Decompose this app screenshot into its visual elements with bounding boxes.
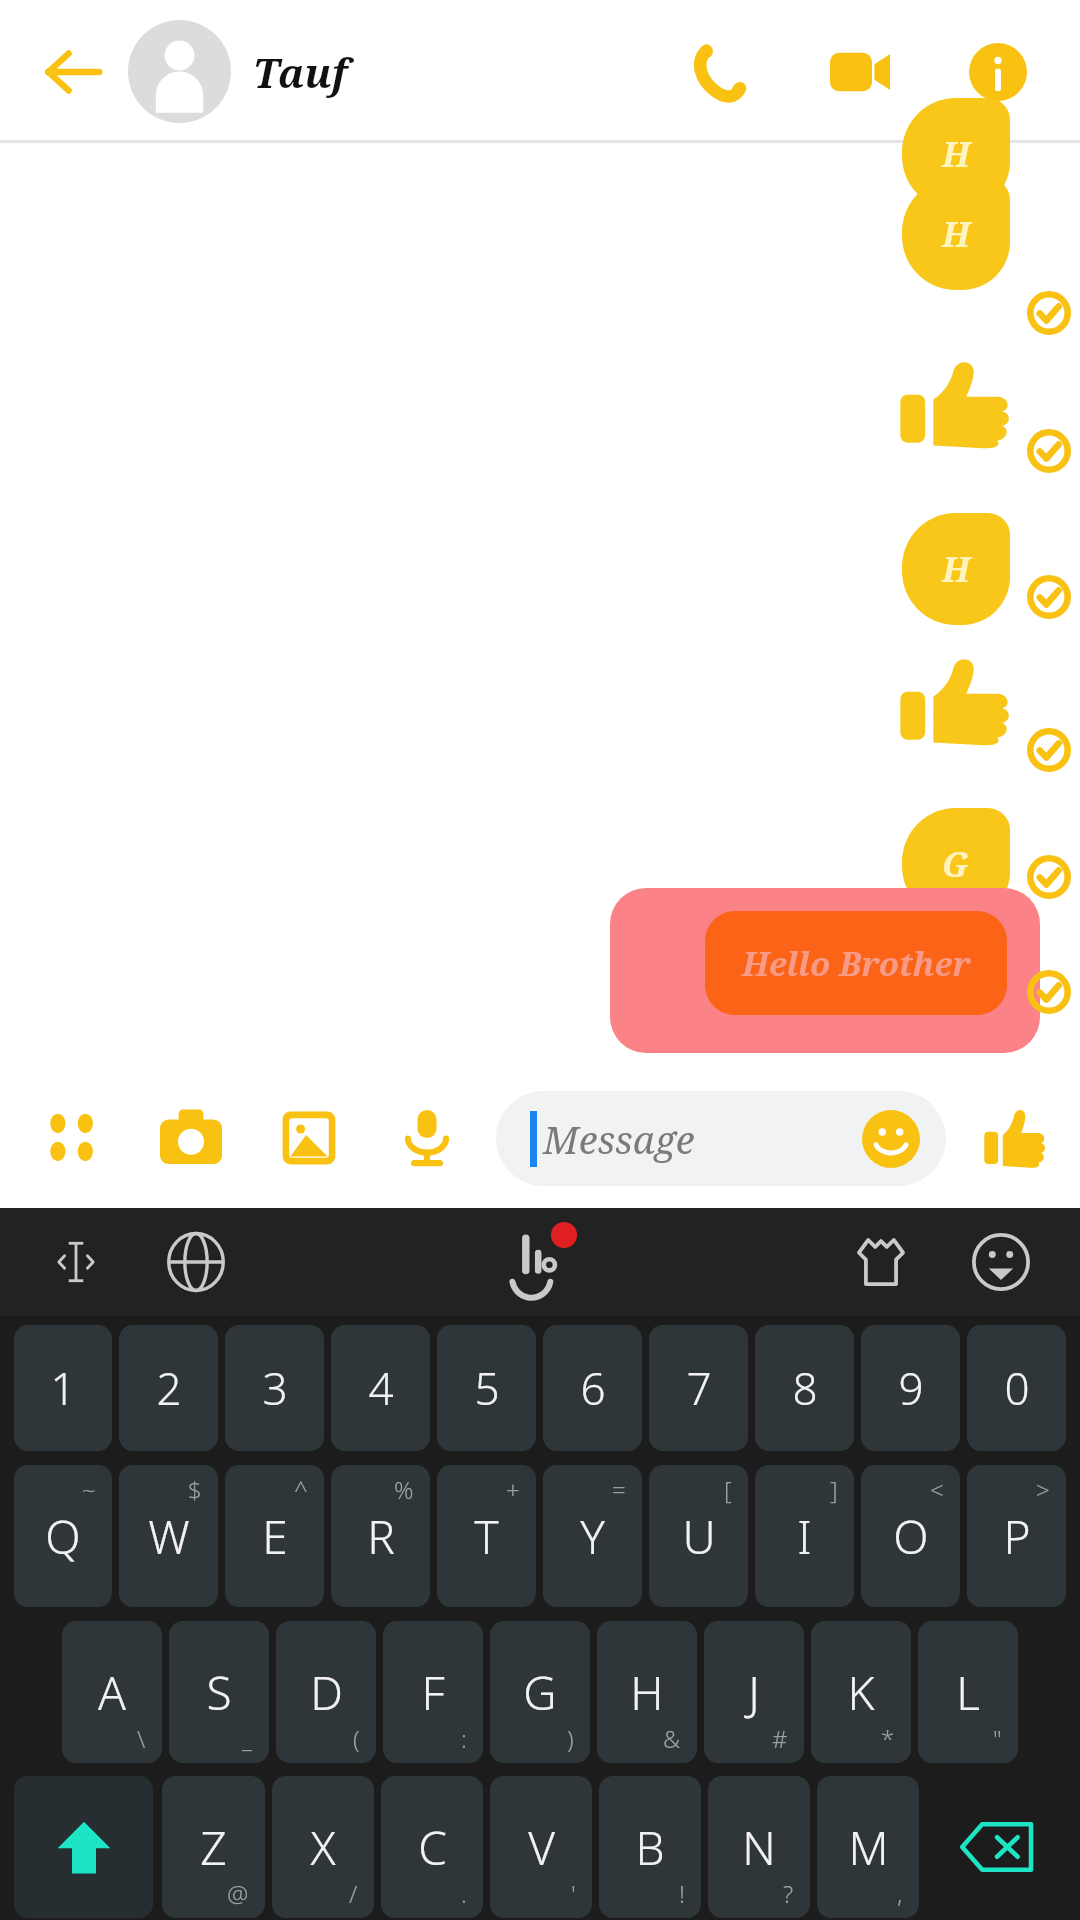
button[interactable]: 7 bbox=[649, 1325, 748, 1451]
staticText: > bbox=[1036, 1473, 1050, 1506]
staticText: G bbox=[523, 1661, 557, 1724]
button[interactable]: E bbox=[225, 1465, 324, 1607]
button[interactable]: 8 bbox=[755, 1325, 854, 1451]
staticText: " bbox=[993, 1722, 1002, 1755]
staticText: = bbox=[612, 1473, 626, 1506]
staticText: I bbox=[797, 1505, 812, 1568]
staticText: # bbox=[772, 1722, 788, 1755]
staticText: D bbox=[310, 1661, 343, 1724]
staticText: 6 bbox=[580, 1358, 606, 1418]
button[interactable]: P bbox=[967, 1465, 1066, 1607]
staticText: * bbox=[881, 1722, 895, 1755]
staticText: 9 bbox=[898, 1358, 924, 1418]
staticText: ? bbox=[783, 1877, 794, 1910]
button[interactable]: Z bbox=[162, 1776, 265, 1918]
button[interactable]: Voice message bbox=[384, 1095, 470, 1181]
staticText: W bbox=[148, 1505, 190, 1568]
staticText: O bbox=[893, 1505, 929, 1568]
button[interactable]: Cursor control bbox=[36, 1222, 116, 1302]
staticText: 5 bbox=[474, 1358, 500, 1418]
staticText: / bbox=[349, 1877, 358, 1910]
button[interactable]: S bbox=[169, 1621, 269, 1763]
button[interactable] bbox=[610, 888, 1040, 1053]
button[interactable]: D bbox=[276, 1621, 376, 1763]
staticText: 7 bbox=[686, 1358, 712, 1418]
button[interactable]: H bbox=[902, 513, 1010, 625]
staticText: 3 bbox=[262, 1358, 288, 1418]
button[interactable]: F bbox=[383, 1621, 483, 1763]
staticText: , bbox=[897, 1877, 903, 1910]
staticText: R bbox=[367, 1505, 395, 1568]
staticText: [ bbox=[724, 1473, 732, 1506]
staticText: H bbox=[942, 131, 970, 177]
button[interactable]: R bbox=[331, 1465, 430, 1607]
button[interactable]: Tauf bbox=[253, 45, 348, 99]
button[interactable]: I bbox=[755, 1465, 854, 1607]
button[interactable]: Profile photo bbox=[128, 20, 231, 123]
button[interactable]: More options bbox=[30, 1095, 116, 1181]
button[interactable]: Thumbs up bbox=[898, 358, 1016, 450]
staticText: Z bbox=[200, 1816, 227, 1879]
staticText: Hello Brother bbox=[742, 941, 971, 986]
button[interactable]: L bbox=[918, 1621, 1018, 1763]
button[interactable]: Stickers bbox=[838, 1219, 924, 1305]
button[interactable]: C bbox=[381, 1776, 483, 1918]
button[interactable]: Video call bbox=[812, 24, 908, 120]
button[interactable]: Shift bbox=[14, 1776, 153, 1918]
button[interactable]: 2 bbox=[119, 1325, 218, 1451]
staticText: + bbox=[506, 1473, 520, 1506]
staticText: K bbox=[847, 1661, 875, 1724]
button[interactable]: H bbox=[902, 98, 1010, 210]
button[interactable]: Message bbox=[496, 1091, 946, 1186]
button[interactable]: B bbox=[599, 1776, 701, 1918]
button[interactable]: H bbox=[597, 1621, 697, 1763]
staticText: L bbox=[956, 1661, 980, 1724]
button[interactable]: N bbox=[708, 1776, 810, 1918]
button[interactable]: G bbox=[902, 808, 1010, 920]
staticText: Q bbox=[45, 1505, 81, 1568]
button[interactable]: G bbox=[490, 1621, 590, 1763]
button[interactable]: Y bbox=[543, 1465, 642, 1607]
button[interactable]: Q bbox=[14, 1465, 112, 1607]
button[interactable]: V bbox=[490, 1776, 592, 1918]
staticText: _ bbox=[242, 1722, 253, 1755]
staticText: 0 bbox=[1004, 1358, 1030, 1418]
button[interactable]: W bbox=[119, 1465, 218, 1607]
button[interactable]: T bbox=[437, 1465, 536, 1607]
button[interactable]: H bbox=[902, 178, 1010, 290]
button[interactable]: X bbox=[272, 1776, 374, 1918]
button[interactable]: Camera bbox=[148, 1095, 234, 1181]
button[interactable]: 0 bbox=[967, 1325, 1066, 1451]
staticText: C bbox=[418, 1816, 447, 1879]
button[interactable]: Emoji bbox=[858, 1106, 924, 1172]
button[interactable]: Send a like bbox=[970, 1092, 1062, 1184]
staticText: E bbox=[262, 1505, 288, 1568]
staticText: . bbox=[461, 1877, 467, 1910]
button[interactable]: O bbox=[861, 1465, 960, 1607]
button[interactable]: Voice call bbox=[670, 24, 766, 120]
button[interactable]: K bbox=[811, 1621, 911, 1763]
button[interactable]: 6 bbox=[543, 1325, 642, 1451]
button[interactable]: 3 bbox=[225, 1325, 324, 1451]
button[interactable]: A bbox=[62, 1621, 162, 1763]
staticText: V bbox=[528, 1816, 555, 1879]
button[interactable]: Change language bbox=[156, 1222, 236, 1302]
button[interactable]: Thumbs up bbox=[898, 655, 1016, 747]
button[interactable]: Hello Brother bbox=[705, 911, 1007, 1015]
button[interactable]: Conversation information bbox=[950, 24, 1046, 120]
button[interactable]: 5 bbox=[437, 1325, 536, 1451]
button[interactable]: 4 bbox=[331, 1325, 430, 1451]
button[interactable]: Gallery bbox=[266, 1095, 352, 1181]
button[interactable]: Handwriting input bbox=[487, 1212, 587, 1312]
button[interactable]: Emoji keyboard bbox=[958, 1219, 1044, 1305]
button[interactable]: 9 bbox=[861, 1325, 960, 1451]
button[interactable]: M bbox=[817, 1776, 919, 1918]
button[interactable]: J bbox=[704, 1621, 804, 1763]
staticText: Y bbox=[580, 1505, 605, 1568]
button[interactable]: U bbox=[649, 1465, 748, 1607]
staticText: S bbox=[206, 1661, 232, 1724]
button[interactable]: 1 bbox=[14, 1325, 112, 1451]
staticText: T bbox=[474, 1505, 499, 1568]
button[interactable]: Backspace bbox=[928, 1776, 1066, 1918]
button[interactable]: Back bbox=[34, 33, 112, 111]
